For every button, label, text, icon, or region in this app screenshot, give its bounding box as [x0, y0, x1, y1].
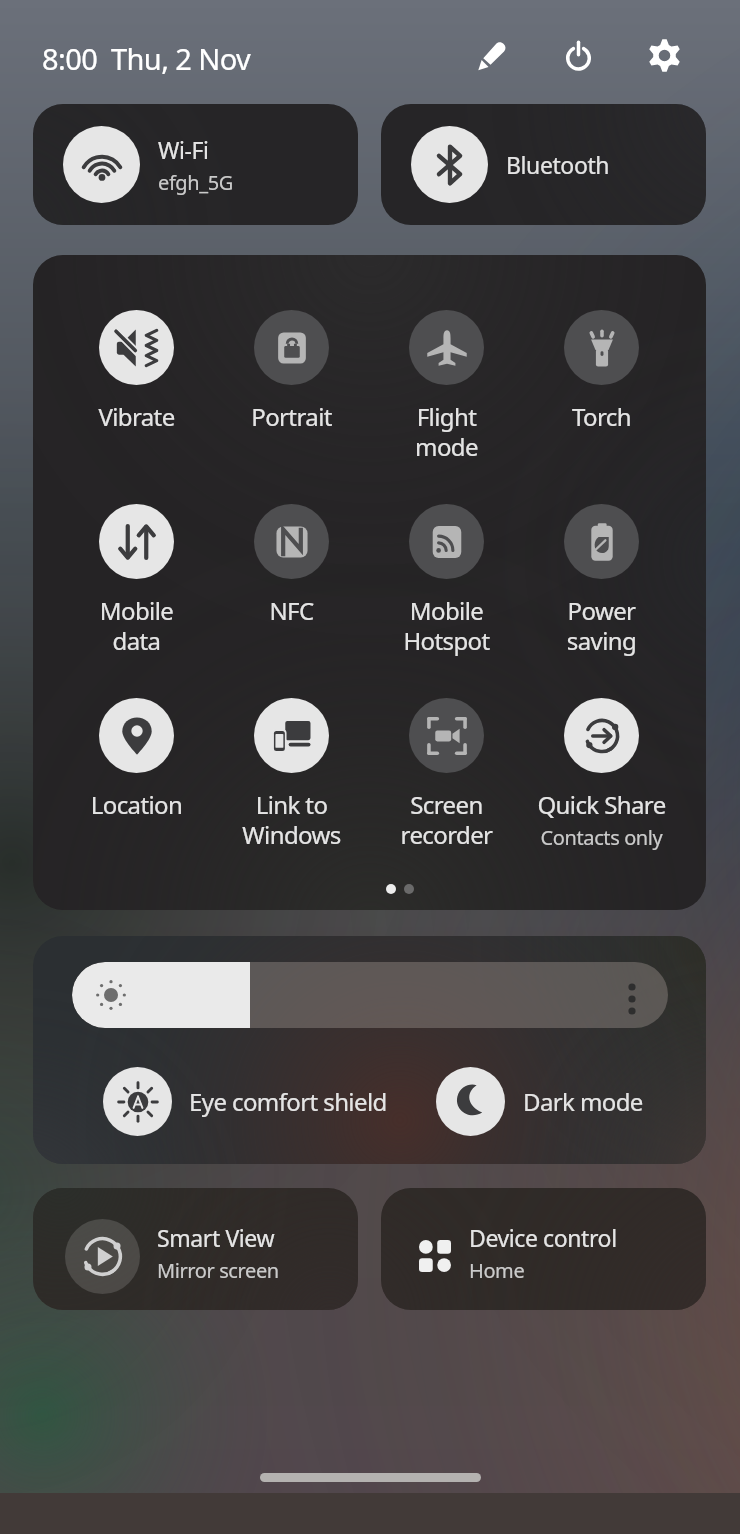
button[interactable]: Mobile data — [59, 504, 214, 657]
staticText: Mobile Hotspot — [369, 594, 524, 657]
staticText: Link to Windows — [214, 788, 369, 851]
button[interactable]: Bluetooth — [381, 104, 706, 225]
staticText: Location — [59, 788, 214, 821]
button[interactable]: Link to Windows — [214, 698, 369, 851]
staticText: 8:00 Thu, 2 Nov — [42, 39, 251, 78]
staticText: Vibrate — [59, 400, 214, 433]
staticText: Device control — [469, 1222, 617, 1253]
button[interactable]: Flight mode — [369, 310, 524, 463]
button[interactable]: Smart View — [33, 1188, 358, 1310]
staticText: Portrait — [214, 400, 369, 433]
staticText: Power saving — [524, 594, 679, 657]
button[interactable]: Torch — [524, 310, 679, 433]
staticText: Mirror screen — [157, 1257, 279, 1284]
button[interactable]: Eye comfort shield — [103, 1067, 387, 1136]
staticText: Eye comfort shield — [189, 1085, 387, 1118]
staticText: Home — [469, 1257, 525, 1284]
staticText: Wi-Fi — [158, 134, 209, 165]
staticText: Dark mode — [523, 1085, 643, 1118]
button[interactable]: NFC — [214, 504, 369, 627]
staticText: Mobile data — [59, 594, 214, 657]
button[interactable]: Location — [59, 698, 214, 821]
button[interactable]: Dark mode — [436, 1067, 643, 1136]
button[interactable]: Vibrate — [59, 310, 214, 433]
button[interactable]: Portrait — [214, 310, 369, 433]
button[interactable]: Quick Share — [524, 698, 679, 851]
button[interactable]: Wi-Fi — [33, 104, 358, 225]
button[interactable] — [72, 962, 668, 1028]
staticText: NFC — [214, 594, 369, 627]
staticText: Smart View — [157, 1222, 275, 1253]
button[interactable]: Settings — [640, 31, 688, 79]
staticText: Quick Share — [524, 788, 679, 821]
staticText: Bluetooth — [506, 149, 610, 180]
staticText: Screen recorder — [369, 788, 524, 851]
staticText: Contacts only — [524, 824, 679, 851]
button[interactable]: Power — [554, 31, 602, 79]
button[interactable]: Power saving — [524, 504, 679, 657]
staticText: Flight mode — [369, 400, 524, 463]
button[interactable]: Edit — [468, 31, 516, 79]
button[interactable]: Screen recorder — [369, 698, 524, 851]
button[interactable]: Device control — [381, 1188, 706, 1310]
staticText: efgh_5G — [158, 169, 233, 196]
button[interactable]: Mobile Hotspot — [369, 504, 524, 657]
staticText: Torch — [524, 400, 679, 433]
